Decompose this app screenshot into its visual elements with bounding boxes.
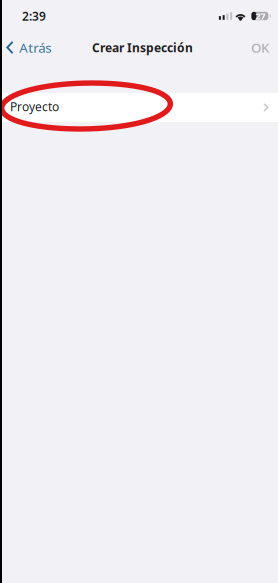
staticText: 2:39: [22, 8, 46, 24]
button[interactable]: Atrás: [0, 32, 57, 63]
staticText: 27: [255, 10, 265, 22]
button[interactable]: OK: [243, 32, 278, 63]
button[interactable]: Proyecto: [0, 93, 278, 122]
staticText: Atrás: [19, 39, 51, 56]
staticText: OK: [251, 39, 269, 56]
staticText: Proyecto: [10, 98, 59, 114]
staticText: Crear Inspección: [92, 39, 193, 55]
